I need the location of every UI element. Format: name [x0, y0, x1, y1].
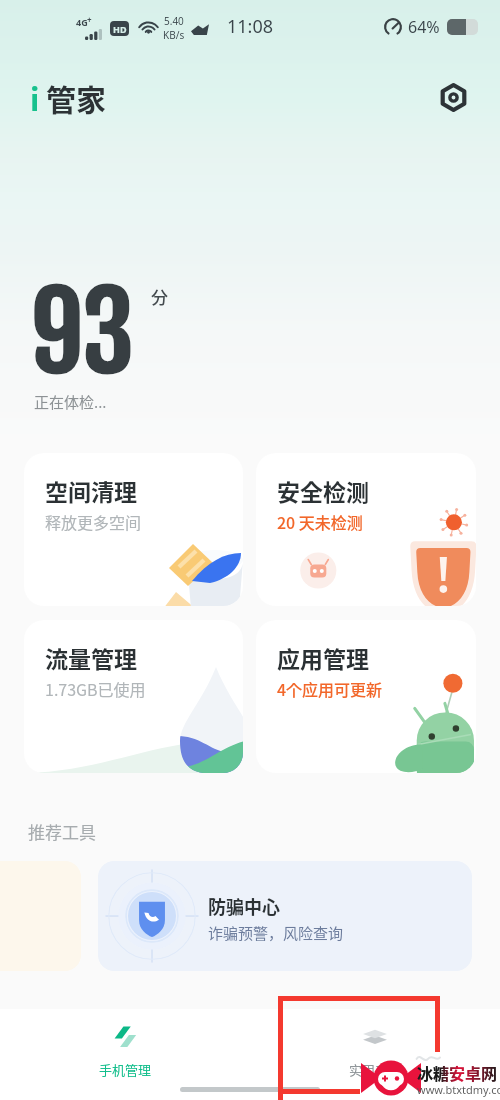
staticText: 防骗中心 [208, 893, 280, 919]
staticText: 11:08 [227, 14, 274, 39]
staticText: 1.73GB已使用 [45, 677, 146, 700]
staticText: 分 [151, 284, 168, 309]
staticText: 手机管理 [99, 1060, 152, 1079]
staticText: 应用管理 [277, 641, 369, 674]
staticText: 诈骗预警，风险查询 [208, 922, 344, 944]
staticText: 释放更多空间 [45, 510, 142, 533]
staticText: + [87, 14, 92, 25]
staticText: HD [113, 23, 127, 35]
staticText: 4个应用可更新 [277, 677, 383, 700]
staticText: KB/s [163, 28, 185, 42]
staticText: 正在体检... [34, 391, 107, 413]
staticText: 20 天未检测 [277, 510, 363, 533]
staticText: i [30, 75, 40, 120]
staticText: 管家 [46, 76, 106, 119]
staticText: 64% [408, 16, 440, 38]
staticText: 5.40 [164, 14, 184, 28]
button[interactable]: 空间清理 [24, 453, 243, 606]
button[interactable]: 防骗中心 [98, 861, 472, 971]
button[interactable]: 安全检测 [256, 453, 476, 606]
button[interactable]: 手机管理 [65, 1025, 185, 1079]
staticText: 实用工具 [349, 1060, 402, 1079]
button[interactable]: 应用管理 [256, 620, 476, 773]
button[interactable]: 实用工具 [315, 1025, 435, 1079]
staticText: 93 [31, 268, 134, 397]
button[interactable]: Settings [432, 76, 474, 118]
staticText: 推荐工具 [28, 819, 96, 844]
staticText: www.btxtdmy.com [417, 1082, 500, 1097]
staticText: 流量管理 [45, 641, 137, 674]
staticText: 4G [76, 16, 88, 28]
staticText: 安全检测 [277, 474, 369, 507]
staticText: 空间清理 [45, 474, 137, 507]
button[interactable]: 流量管理 [24, 620, 243, 773]
staticText: 冰糖安卓网 [417, 1061, 498, 1084]
